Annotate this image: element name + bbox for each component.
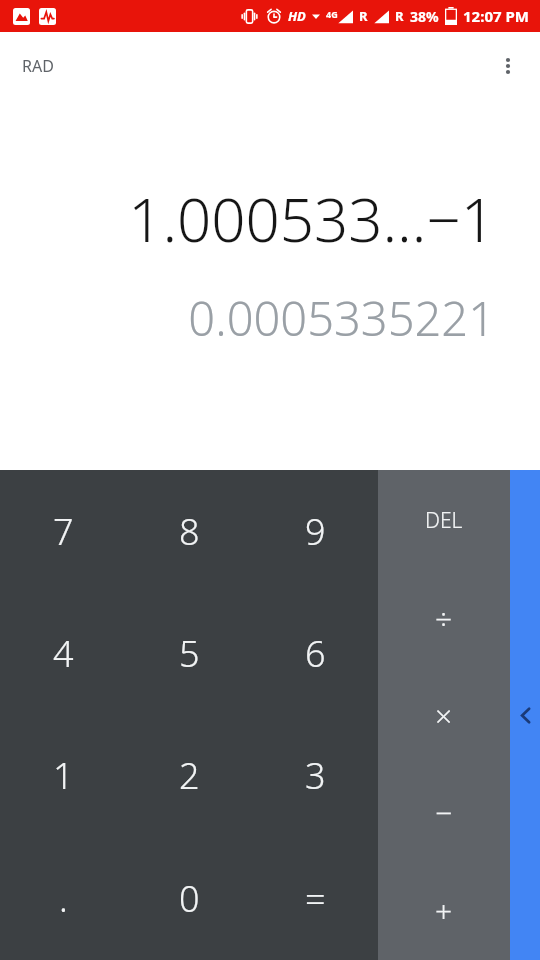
button[interactable]: 3 <box>252 714 378 837</box>
staticText: 5 <box>179 629 200 678</box>
staticText: 1.000533…−1 <box>128 178 495 260</box>
button[interactable]: − <box>378 764 510 861</box>
staticText: 4 <box>53 629 74 678</box>
staticText: 9 <box>305 507 326 556</box>
button[interactable]: 7 <box>0 470 126 592</box>
button[interactable]: 5 <box>126 592 252 714</box>
button[interactable]: 4 <box>0 592 126 714</box>
staticText: 6 <box>305 629 326 678</box>
staticText: HD <box>288 7 306 25</box>
staticText: 12:07 PM <box>463 6 529 26</box>
staticText: RAD <box>22 55 54 77</box>
staticText: R <box>359 7 368 25</box>
staticText: 2 <box>179 751 200 800</box>
staticText: R <box>395 7 404 25</box>
button[interactable]: × <box>378 667 510 764</box>
button[interactable]: RAD <box>12 45 64 87</box>
button[interactable]: 8 <box>126 470 252 592</box>
staticText: 7 <box>53 507 74 556</box>
staticText: 4G <box>326 8 338 20</box>
button[interactable]: . <box>0 837 126 960</box>
staticText: 8 <box>179 507 200 556</box>
button[interactable]: More options <box>484 42 532 90</box>
button[interactable]: DEL <box>378 470 510 570</box>
staticText: 0 <box>179 874 200 923</box>
button[interactable]: 6 <box>252 592 378 714</box>
button[interactable]: 9 <box>252 470 378 592</box>
staticText: 3 <box>305 751 326 800</box>
button[interactable]: + <box>378 861 510 960</box>
staticText: ÷ <box>435 598 453 639</box>
button[interactable]: = <box>252 837 378 960</box>
staticText: 1 <box>53 751 74 800</box>
staticText: × <box>435 695 453 736</box>
staticText: DEL <box>425 506 463 535</box>
staticText: . <box>59 874 68 923</box>
button[interactable]: ÷ <box>378 570 510 667</box>
staticText: = <box>305 874 326 923</box>
button[interactable]: 0 <box>126 837 252 960</box>
button[interactable]: 2 <box>126 714 252 837</box>
button[interactable]: Show advanced pad <box>510 470 540 960</box>
staticText: − <box>435 792 453 833</box>
staticText: 0.0005335221 <box>188 286 495 350</box>
staticText: + <box>435 890 453 931</box>
staticText: 38% <box>410 7 439 26</box>
button[interactable]: 1 <box>0 714 126 837</box>
